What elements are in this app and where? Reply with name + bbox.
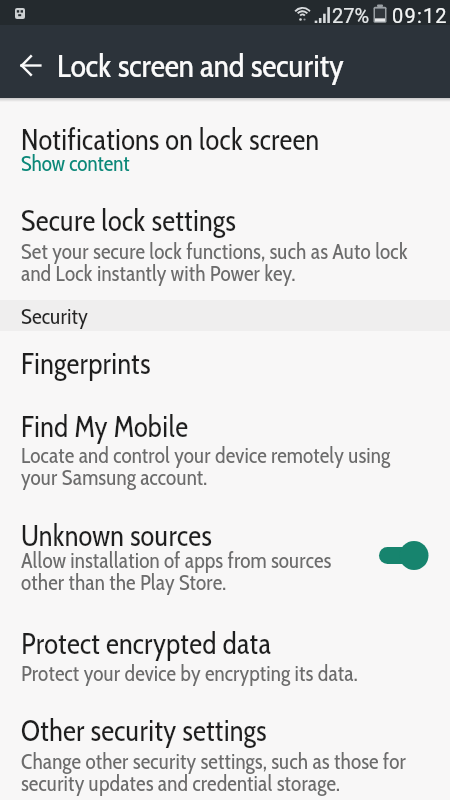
- button[interactable]: [0, 395, 450, 500]
- staticText: Fingerprints: [21, 346, 151, 381]
- staticText: Protect your device by encrypting its da…: [21, 660, 358, 686]
- staticText: 09:12: [392, 4, 448, 27]
- button[interactable]: [0, 190, 450, 295]
- button[interactable]: [0, 104, 450, 190]
- staticText: Secure lock settings: [21, 203, 236, 238]
- staticText: Show content: [21, 150, 130, 176]
- staticText: Allow installation of apps from sources …: [21, 547, 332, 596]
- staticText: Locate and control your device remotely …: [21, 442, 391, 491]
- button[interactable]: [0, 500, 450, 610]
- staticText: Find My Mobile: [21, 409, 189, 444]
- staticText: Security: [21, 303, 88, 330]
- staticText: Change other security settings, such as …: [21, 748, 406, 797]
- button[interactable]: [8, 44, 52, 88]
- button[interactable]: [0, 703, 450, 800]
- staticText: Other security settings: [21, 713, 267, 748]
- staticText: Unknown sources: [21, 518, 212, 553]
- staticText: Set your secure lock functions, such as …: [21, 238, 408, 287]
- button[interactable]: [0, 610, 450, 703]
- button[interactable]: [372, 536, 434, 576]
- staticText: Protect encrypted data: [21, 626, 272, 661]
- staticText: Notifications on lock screen: [21, 122, 320, 157]
- staticText: 27%: [332, 4, 370, 27]
- button[interactable]: [0, 337, 450, 395]
- staticText: Lock screen and security: [57, 46, 344, 85]
